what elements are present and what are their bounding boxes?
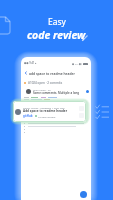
- button[interactable]: New comment: [80, 191, 87, 198]
- staticText: Easy: [48, 16, 66, 28]
- staticText: Some comments. Multiple a long classes: [33, 91, 86, 95]
- staticText: ●● 9:41 ▴: [24, 61, 37, 65]
- staticText: Mary Smith · 3h: [33, 88, 51, 91]
- staticText: #1024 open · 2 commits: [28, 81, 63, 85]
- staticText: ● •••• ▮▮: [72, 62, 82, 65]
- button[interactable]: Resolve: [86, 90, 89, 93]
- staticText: gitHub: [23, 114, 33, 118]
- staticText: code review: [27, 28, 86, 42]
- staticText: Add space to readme header: [23, 109, 68, 113]
- staticText: Taylor Archer · reviewed 1 hour ago: [23, 106, 65, 109]
- staticText: add space to readme header: [29, 71, 75, 75]
- button[interactable]: Taylor Archer · reviewed 1 hour ago: [13, 101, 86, 122]
- button[interactable]: Back: [23, 70, 29, 76]
- staticText: No diff context: [38, 115, 56, 118]
